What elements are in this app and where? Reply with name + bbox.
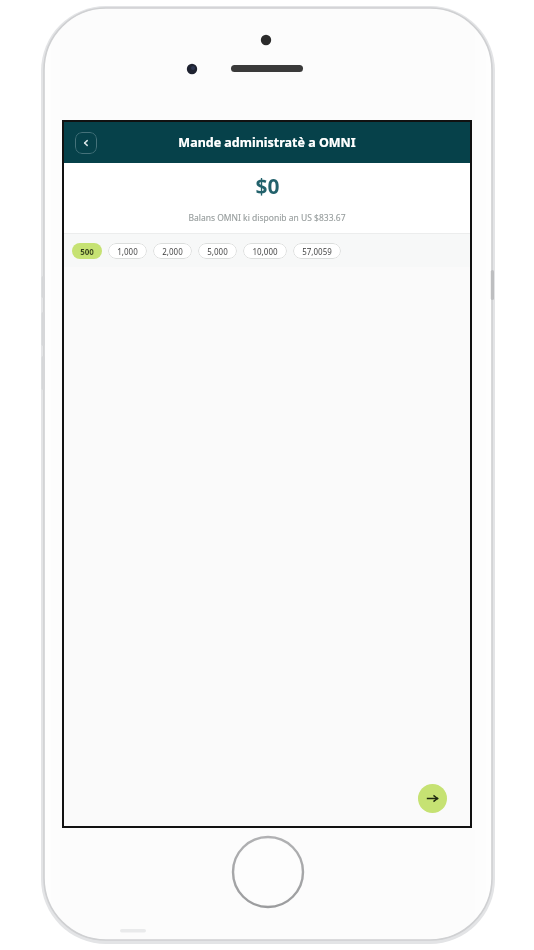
staticText: $0 [255,172,280,201]
staticText: Balans OMNI ki disponib an US $833.67 [188,212,346,224]
staticText: 500 [80,246,94,257]
staticText: 57,0059 [302,246,332,257]
button[interactable]: 10,000 [243,243,287,259]
button[interactable]: 1,000 [108,243,147,259]
staticText: 2,000 [162,246,183,257]
button[interactable]: 5,000 [198,243,237,259]
button[interactable]: 500 [72,243,102,259]
button[interactable]: 57,0059 [293,243,341,259]
staticText: 5,000 [207,246,228,257]
staticText: 1,000 [117,246,138,257]
button[interactable]: 2,000 [153,243,192,259]
staticText: 10,000 [252,246,278,257]
staticText: Mande administratè a OMNI [178,134,356,151]
button[interactable]: Back [75,132,97,154]
button[interactable]: Continue [418,784,447,813]
